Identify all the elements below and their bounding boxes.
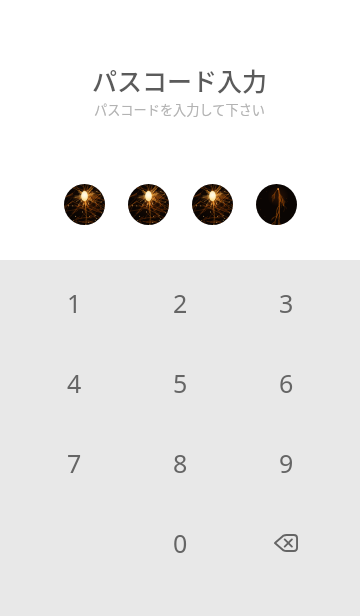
other: Delete [270, 527, 302, 559]
button[interactable]: Delete [233, 503, 339, 583]
button[interactable]: 0 [127, 503, 233, 583]
button[interactable]: 5 [127, 343, 233, 423]
staticText: 0 [173, 526, 188, 560]
button[interactable]: 9 [233, 423, 339, 503]
button[interactable]: 3 [233, 263, 339, 343]
button[interactable]: 2 [127, 263, 233, 343]
staticText: 6 [279, 366, 294, 400]
button[interactable]: 1 [21, 263, 127, 343]
staticText: パスコードを入力して下さい [94, 100, 266, 119]
staticText: 1 [67, 286, 82, 320]
staticText: 3 [279, 286, 294, 320]
button[interactable]: 4 [21, 343, 127, 423]
button[interactable]: 7 [21, 423, 127, 503]
staticText: 8 [173, 446, 188, 480]
button[interactable]: 6 [233, 343, 339, 423]
staticText: 5 [173, 366, 188, 400]
staticText: 2 [173, 286, 188, 320]
staticText: 9 [279, 446, 294, 480]
staticText: パスコード入力 [92, 62, 268, 98]
button[interactable]: 8 [127, 423, 233, 503]
staticText: 7 [67, 446, 82, 480]
staticText: 4 [67, 366, 82, 400]
